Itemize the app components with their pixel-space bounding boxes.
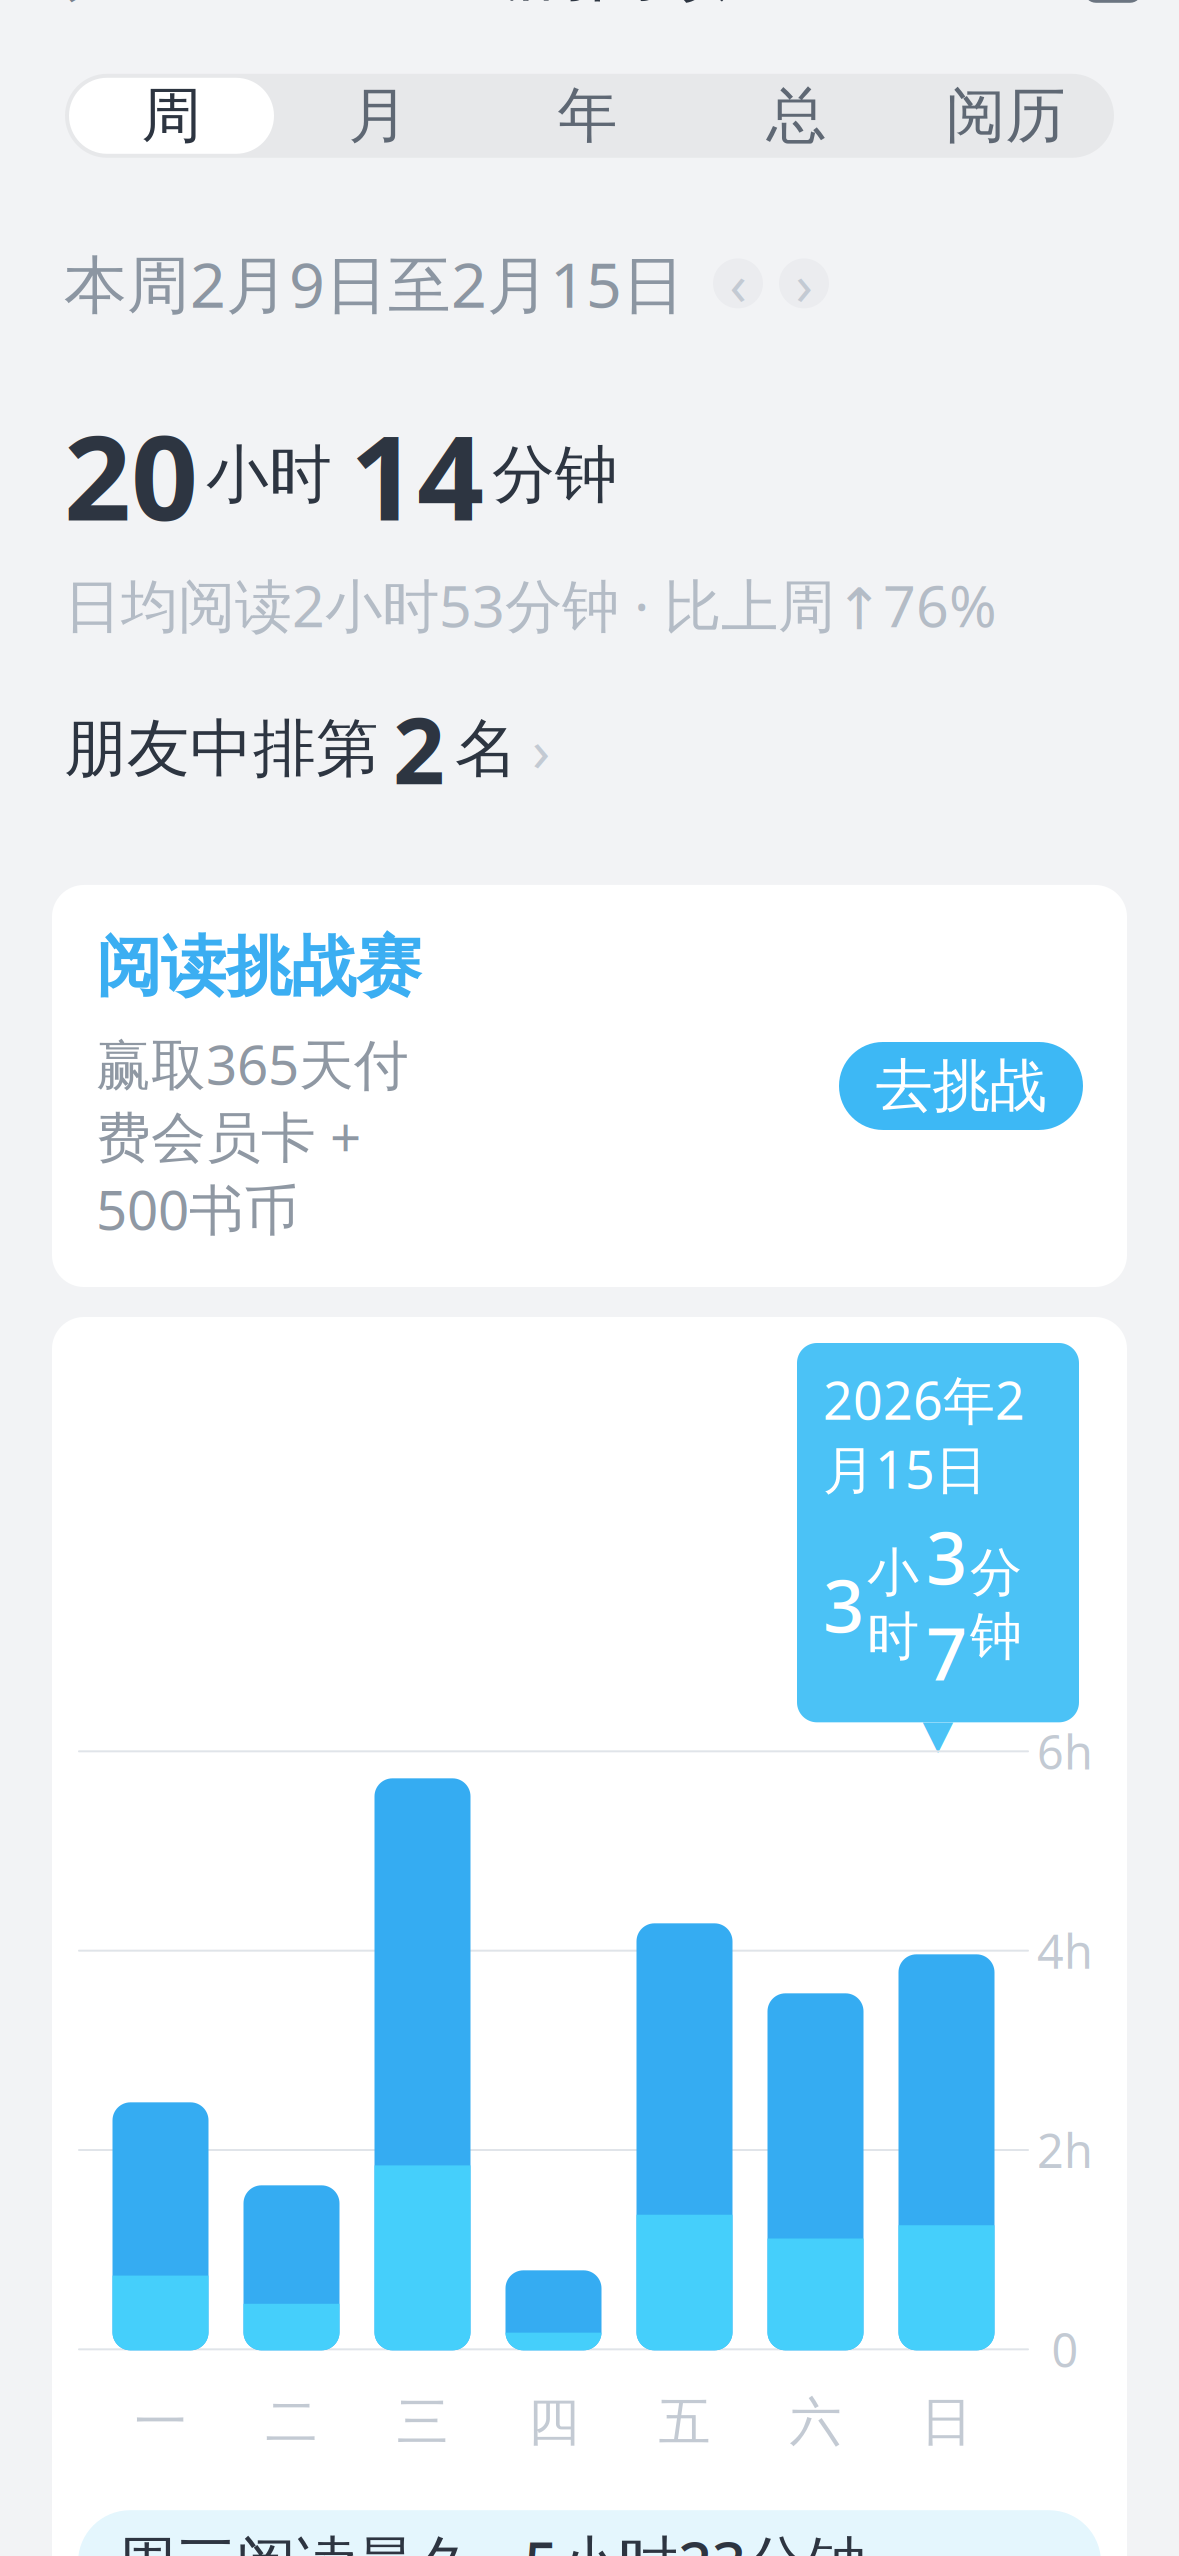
staticText: 日均阅读2小时53分钟 · 比上周↑76% bbox=[64, 567, 997, 643]
staticText: 0 bbox=[1051, 2318, 1078, 2380]
staticText: 五 bbox=[658, 2390, 710, 2454]
staticText: 赢取365天付费会员卡 + 500书币 bbox=[96, 1027, 409, 1245]
button[interactable]: 朋友中排第 bbox=[64, 699, 550, 799]
staticText: › bbox=[795, 246, 812, 321]
staticText: ▼ bbox=[922, 1712, 953, 1757]
staticText: 去挑战 bbox=[875, 1051, 1046, 1121]
staticText: 我的阅读 bbox=[447, 0, 731, 12]
staticText: 2 bbox=[393, 689, 445, 809]
staticText: 周 bbox=[141, 79, 201, 153]
button[interactable]: 总 bbox=[692, 78, 901, 154]
staticText: 阅历 bbox=[945, 79, 1065, 153]
staticText: 小时 bbox=[867, 1541, 919, 1668]
staticText: 20 bbox=[64, 397, 198, 553]
staticText: 年 bbox=[557, 79, 617, 153]
staticText: 分钟 bbox=[492, 436, 618, 513]
staticText: 2h bbox=[1037, 2119, 1093, 2181]
staticText: 月 bbox=[348, 79, 408, 153]
staticText: ‹ bbox=[50, 0, 81, 36]
staticText: 总 bbox=[766, 79, 826, 153]
button[interactable]: 上一周 bbox=[713, 258, 763, 308]
staticText: ‹ bbox=[729, 246, 746, 321]
staticText: 2026年2月15日 bbox=[823, 1365, 1025, 1503]
staticText: 14 bbox=[350, 397, 484, 553]
staticText: 3 bbox=[823, 1557, 864, 1652]
staticText: 名 bbox=[455, 710, 518, 787]
staticText: 4h bbox=[1037, 1920, 1093, 1982]
button[interactable]: 下一周 bbox=[779, 258, 829, 308]
staticText: 六 bbox=[789, 2390, 841, 2454]
staticText: 分钟 bbox=[970, 1541, 1022, 1668]
button[interactable]: 分享 bbox=[1065, 0, 1161, 17]
button[interactable]: 阅历 bbox=[901, 78, 1110, 154]
staticText: 阅读挑战赛 bbox=[96, 927, 421, 1007]
staticText: 一 bbox=[134, 2390, 186, 2454]
staticText: 37 bbox=[926, 1509, 967, 1700]
button[interactable]: 周 bbox=[69, 78, 274, 154]
staticText: 周三阅读最久 · 5小时23分钟 bbox=[116, 2522, 866, 2556]
staticText: › bbox=[532, 710, 550, 788]
staticText: 四 bbox=[527, 2390, 579, 2454]
button[interactable]: 年 bbox=[483, 78, 692, 154]
button[interactable]: 返回 bbox=[18, 0, 114, 17]
staticText: 二 bbox=[265, 2390, 317, 2454]
staticText: 6h bbox=[1037, 1720, 1093, 1782]
staticText: 小时 bbox=[206, 436, 332, 513]
staticText: ↗ bbox=[1090, 0, 1148, 8]
button[interactable]: 月 bbox=[274, 78, 483, 154]
staticText: 朋友中排第 bbox=[64, 710, 379, 787]
staticText: 本周2月9日至2月15日 bbox=[64, 242, 685, 325]
staticText: 日 bbox=[920, 2390, 972, 2454]
staticText: 三 bbox=[396, 2390, 448, 2454]
button[interactable]: 去挑战 bbox=[839, 1042, 1083, 1130]
